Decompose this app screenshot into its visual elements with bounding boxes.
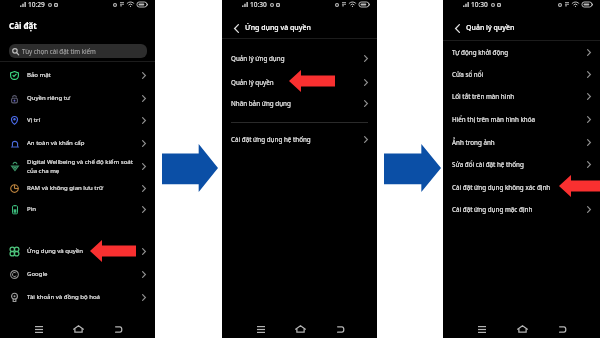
button[interactable]: Ảnh trong ảnh: [443, 131, 600, 153]
staticText: Cài đặt ứng dụng mặc định: [452, 205, 591, 214]
button[interactable]: RAM và không gian lưu trữ: [0, 177, 155, 199]
button[interactable]: Quản lý quyền: [222, 71, 377, 93]
staticText: Bảo mật: [27, 71, 146, 79]
staticText: Vị trí: [27, 116, 146, 124]
button[interactable]: Cài đặt ứng dụng mặc định: [443, 198, 600, 220]
staticText: Sửa đổi cài đặt hệ thống: [452, 160, 591, 169]
staticText: Tùy chọn cài đặt tìm kiếm: [22, 47, 96, 55]
staticText: Google: [27, 270, 146, 278]
button[interactable]: Ứng dụng và quyền: [0, 240, 155, 262]
button[interactable]: Home: [513, 320, 531, 338]
button[interactable]: Recents: [30, 320, 48, 338]
staticText: 10:29: [28, 0, 45, 9]
button[interactable]: Sửa đổi cài đặt hệ thống: [443, 153, 600, 175]
staticText: Ứng dụng và quyền: [245, 23, 311, 33]
button[interactable]: Google: [0, 263, 155, 285]
button[interactable]: Lối tắt trên màn hình: [443, 85, 600, 107]
button[interactable]: Quyền riêng tư: [0, 87, 155, 109]
button[interactable]: Cài đặt ứng dụng không xác định: [443, 176, 600, 198]
button[interactable]: Recents: [252, 320, 270, 338]
button[interactable]: Home: [69, 320, 87, 338]
staticText: Quyền riêng tư: [27, 94, 146, 102]
button[interactable]: Vị trí: [0, 109, 155, 131]
button[interactable]: Tùy chọn cài đặt tìm kiếm: [9, 44, 147, 58]
staticText: 10:30: [250, 0, 267, 9]
staticText: Pin: [27, 205, 146, 213]
button[interactable]: An toàn và khẩn cấp: [0, 132, 155, 154]
staticText: An toàn và khẩn cấp: [27, 139, 146, 147]
button[interactable]: Cửa sổ nổi: [443, 63, 600, 85]
button[interactable]: Digital Wellbeing và chế độ kiểm soát củ…: [0, 155, 155, 177]
staticText: Cài đặt ứng dụng hệ thống: [231, 135, 368, 144]
staticText: Ảnh trong ảnh: [452, 138, 591, 147]
button[interactable]: Back: [554, 320, 572, 338]
staticText: Cài đặt: [9, 20, 37, 31]
button[interactable]: Cài đặt ứng dụng hệ thống: [222, 128, 377, 150]
button[interactable]: Hiển thị trên màn hình khóa: [443, 108, 600, 130]
button[interactable]: Back: [229, 21, 243, 35]
staticText: 10:30: [471, 0, 488, 9]
button[interactable]: Back: [110, 320, 128, 338]
staticText: Lối tắt trên màn hình: [452, 92, 591, 101]
staticText: Quản lý quyền: [231, 78, 368, 87]
staticText: Tự động khởi động: [452, 48, 591, 57]
staticText: Nhân bản ứng dụng: [231, 99, 368, 108]
staticText: Hiển thị trên màn hình khóa: [452, 115, 591, 124]
staticText: Cửa sổ nổi: [452, 70, 591, 79]
staticText: Quản lý ứng dụng: [231, 54, 368, 63]
button[interactable]: Recents: [473, 320, 491, 338]
staticText: Digital Wellbeing và chế độ kiểm soát củ…: [27, 158, 139, 175]
button[interactable]: Tự động khởi động: [443, 41, 600, 63]
button[interactable]: Home: [291, 320, 309, 338]
button[interactable]: Back: [332, 320, 350, 338]
staticText: Cài đặt ứng dụng không xác định: [452, 183, 591, 192]
button[interactable]: Bảo mật: [0, 64, 155, 86]
button[interactable]: Quản lý ứng dụng: [222, 47, 377, 69]
button[interactable]: Back: [450, 21, 464, 35]
staticText: Ứng dụng và quyền: [27, 247, 146, 255]
staticText: Tài khoản và đồng bộ hoá: [27, 293, 146, 301]
button[interactable]: Nhân bản ứng dụng: [222, 92, 377, 114]
staticText: Quản lý quyền: [466, 23, 515, 33]
staticText: RAM và không gian lưu trữ: [27, 184, 146, 192]
button[interactable]: Tài khoản và đồng bộ hoá: [0, 286, 155, 308]
button[interactable]: Pin: [0, 198, 155, 220]
